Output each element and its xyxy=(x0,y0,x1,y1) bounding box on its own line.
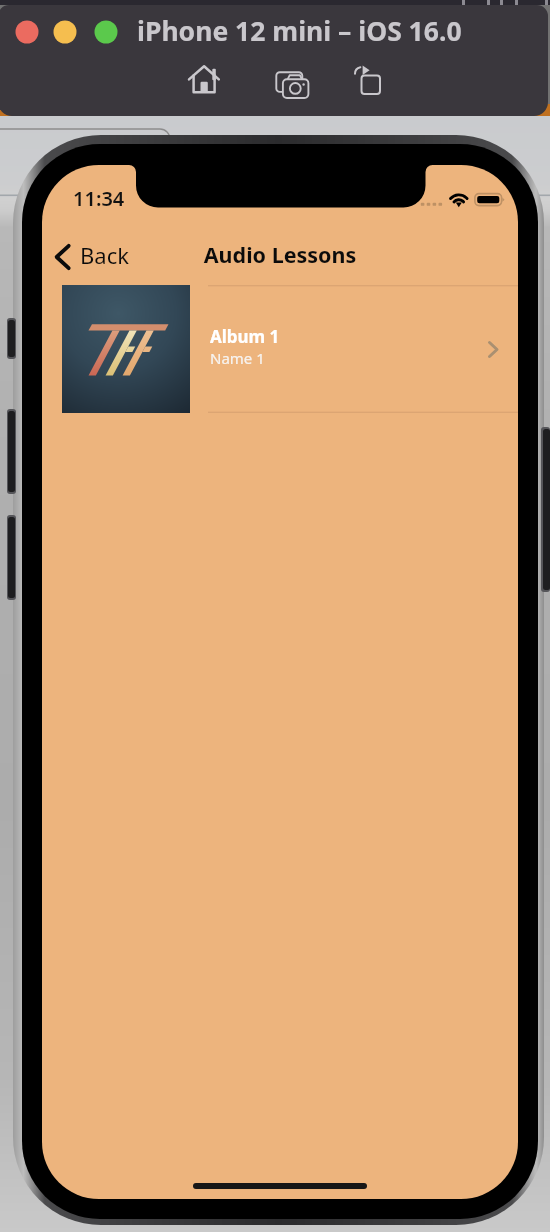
button[interactable]: Album 1 xyxy=(42,285,518,413)
staticText: 11:34 xyxy=(73,185,125,212)
staticText: Audio Lessons xyxy=(42,240,518,269)
button[interactable]: Back xyxy=(52,237,129,277)
staticText: Back xyxy=(80,240,129,270)
staticText: Album 1 xyxy=(210,325,280,348)
staticText: Name 1 xyxy=(210,348,265,368)
staticText: iPhone 12 mini – iOS 16.0 xyxy=(137,13,462,49)
button[interactable]: Home xyxy=(186,62,222,98)
button[interactable]: Rotate xyxy=(353,65,387,99)
button[interactable]: Screenshot xyxy=(272,65,312,105)
